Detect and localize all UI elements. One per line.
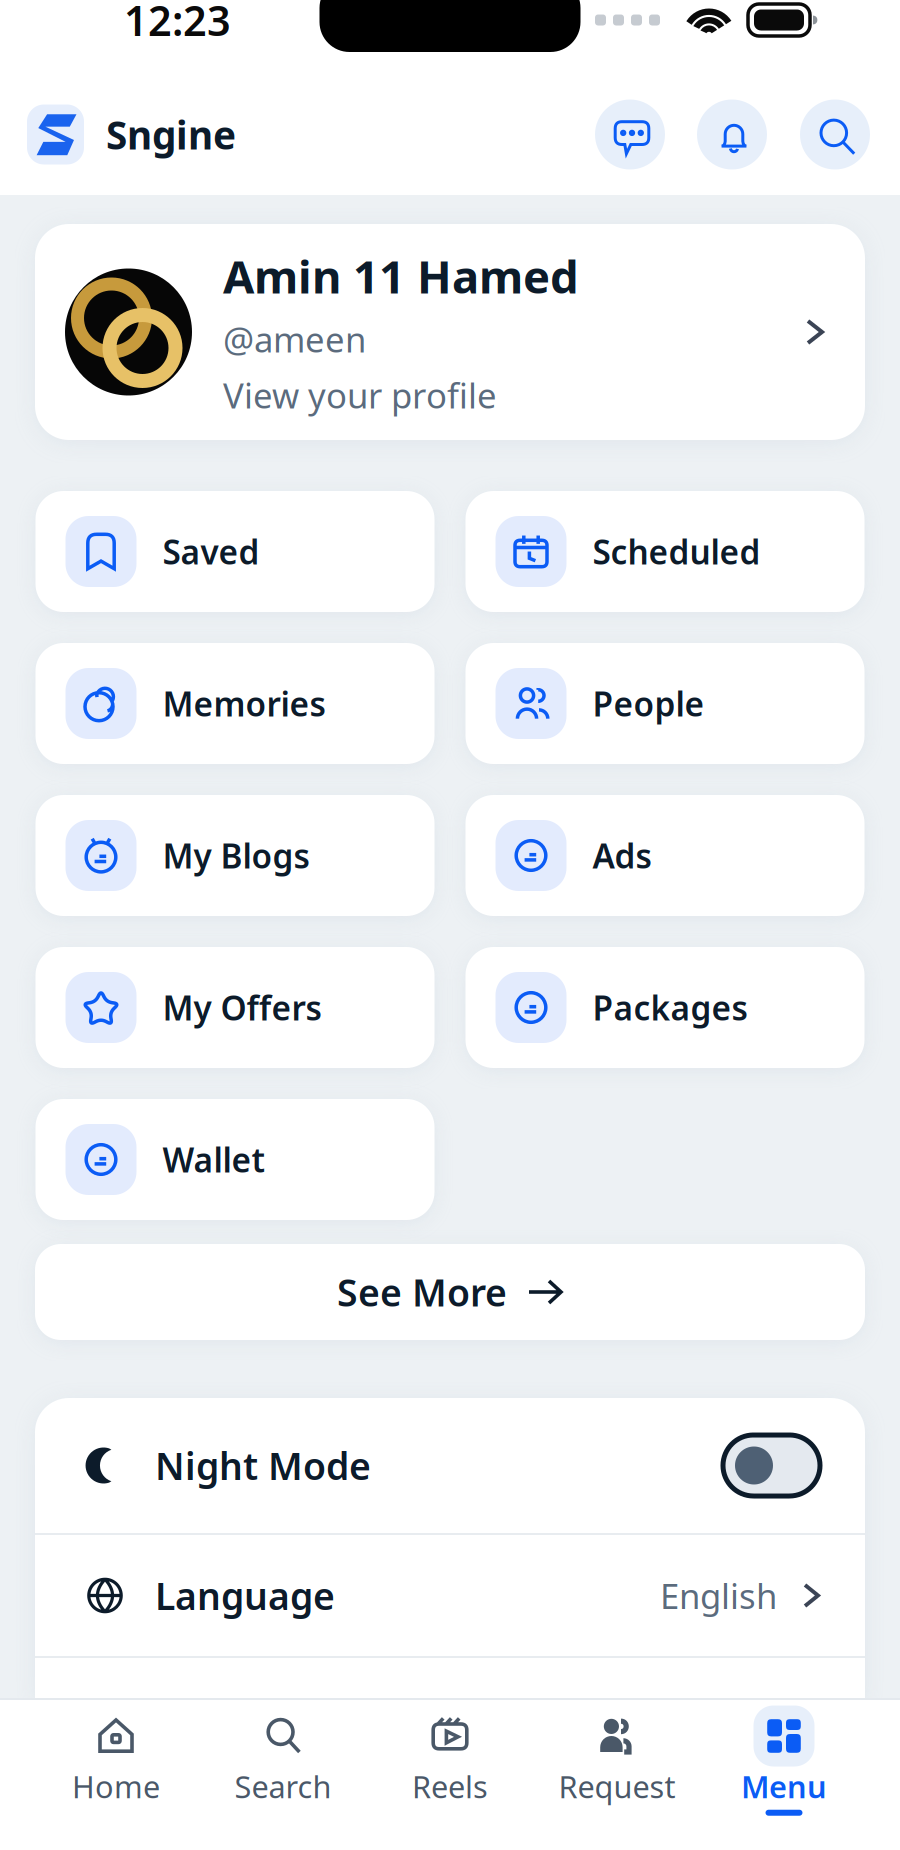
button[interactable]: People	[465, 643, 864, 764]
button[interactable]: See More	[35, 1244, 865, 1340]
button[interactable]: Amin 11 Hamed	[35, 224, 865, 440]
staticText: People	[592, 681, 704, 726]
button[interactable]: Ads	[465, 795, 864, 916]
button[interactable]: Wallet	[35, 1099, 434, 1220]
staticText: Request	[558, 1766, 675, 1807]
button[interactable]: Menu	[700, 1708, 867, 1840]
staticText: English	[660, 1572, 777, 1618]
button[interactable]: Home	[32, 1708, 199, 1840]
staticText: Wallet	[162, 1137, 265, 1182]
staticText: Menu	[741, 1766, 827, 1807]
button[interactable]: Saved	[35, 491, 434, 612]
staticText: See More	[337, 1267, 507, 1317]
staticText: My Blogs	[162, 833, 309, 878]
button[interactable]: Sngine	[27, 104, 236, 164]
button[interactable]: Messages	[595, 99, 665, 169]
staticText: Ads	[592, 833, 651, 878]
button[interactable]: Search	[800, 99, 870, 169]
staticText: Night Mode	[155, 1441, 371, 1490]
button[interactable]: My Blogs	[35, 795, 434, 916]
staticText: Home	[72, 1766, 160, 1807]
staticText: Reels	[412, 1766, 488, 1807]
button[interactable]: Notifications	[697, 99, 767, 169]
staticText: Search	[234, 1766, 331, 1807]
staticText: Memories	[162, 681, 325, 726]
button[interactable]: Reels	[366, 1708, 533, 1840]
staticText: Sngine	[106, 109, 236, 160]
staticText: Scheduled	[592, 529, 760, 574]
button[interactable]: Search	[199, 1708, 366, 1840]
button[interactable]: My Offers	[35, 947, 434, 1068]
staticText: Amin 11 Hamed	[223, 246, 579, 306]
button[interactable]: Night Mode	[35, 1398, 865, 1533]
staticText: View your profile	[223, 372, 497, 418]
staticText: Saved	[162, 529, 259, 574]
button[interactable]: Language	[35, 1535, 865, 1656]
staticText: Language	[155, 1571, 335, 1620]
staticText: Packages	[592, 985, 747, 1030]
staticText: @ameen	[223, 316, 366, 362]
button[interactable]: Packages	[465, 947, 864, 1068]
staticText: 12:23	[124, 0, 231, 47]
button[interactable]: Request	[533, 1708, 700, 1840]
button[interactable]: Scheduled	[465, 491, 864, 612]
button[interactable]: Memories	[35, 643, 434, 764]
staticText: My Offers	[162, 985, 321, 1030]
